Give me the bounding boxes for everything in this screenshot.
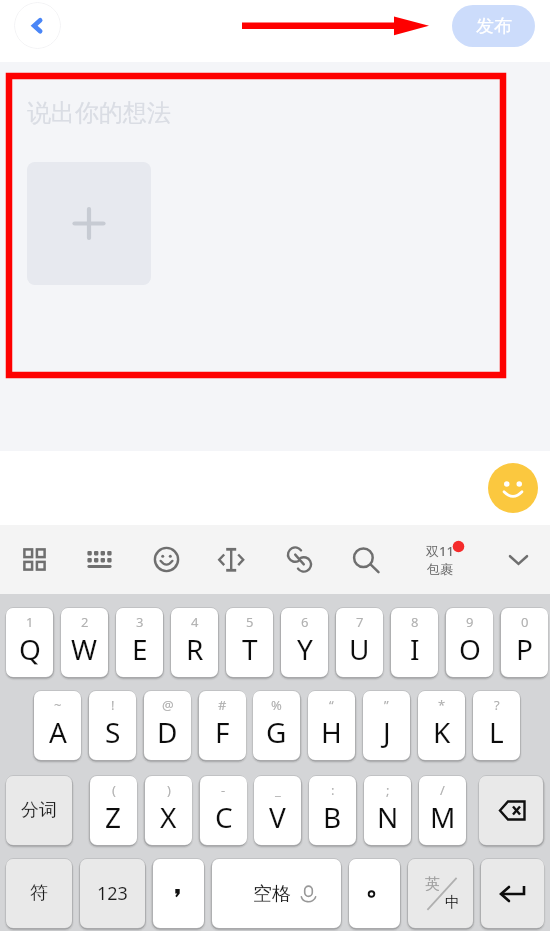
staticText: B xyxy=(323,798,342,836)
button[interactable]: Emoji xyxy=(488,463,538,513)
staticText: 英 xyxy=(425,875,440,894)
button[interactable]: 符 xyxy=(6,859,72,928)
button[interactable]: 0 xyxy=(501,608,548,677)
staticText: J xyxy=(383,713,391,751)
button[interactable]: ) xyxy=(145,776,192,845)
button[interactable]: 8 xyxy=(391,608,438,677)
button[interactable]: 4 xyxy=(171,608,218,677)
button[interactable]: 3 xyxy=(116,608,163,677)
staticText: ; xyxy=(386,781,390,799)
button[interactable]: ” xyxy=(363,691,410,760)
button[interactable]: / xyxy=(419,776,466,845)
button[interactable]: Enter xyxy=(481,859,544,928)
button[interactable]: @ xyxy=(144,691,191,760)
staticText: L xyxy=(489,713,504,751)
staticText: ? xyxy=(494,696,500,714)
button[interactable]: 6 xyxy=(281,608,328,677)
button[interactable]: _ xyxy=(254,776,301,845)
button[interactable]: Collapse keyboard xyxy=(494,525,542,594)
staticText: W xyxy=(71,630,98,668)
staticText: ( xyxy=(112,781,116,799)
button[interactable]: 2 xyxy=(61,608,108,677)
button[interactable]: - xyxy=(200,776,247,845)
button[interactable]: ~ xyxy=(34,691,81,760)
button[interactable]: Search xyxy=(341,525,389,594)
staticText: 符 xyxy=(30,882,48,905)
staticText: N xyxy=(377,798,399,836)
staticText: * xyxy=(438,696,446,714)
button[interactable]: Emoji xyxy=(142,525,190,594)
button[interactable]: 分词 xyxy=(6,776,72,845)
staticText: ! xyxy=(111,696,115,714)
staticText: 2 xyxy=(81,613,89,631)
button[interactable]: 7 xyxy=(336,608,383,677)
staticText: Q xyxy=(19,630,41,668)
staticText: ~ xyxy=(54,696,62,714)
staticText: 8 xyxy=(411,613,419,631)
button[interactable]: Add photo xyxy=(27,162,151,285)
staticText: U xyxy=(349,630,370,668)
staticText: T xyxy=(242,630,258,668)
button[interactable]: 空格 xyxy=(212,859,341,928)
staticText: X xyxy=(160,798,177,836)
staticText: “ xyxy=(329,696,334,714)
staticText: G xyxy=(266,713,287,751)
staticText: V xyxy=(269,798,286,836)
staticText: K xyxy=(433,713,451,751)
button[interactable]: * xyxy=(418,691,465,760)
staticText: M xyxy=(430,798,456,836)
button[interactable]: # xyxy=(199,691,246,760)
staticText: 包裹 xyxy=(427,561,453,577)
button[interactable]: Switch English Chinese xyxy=(408,859,473,928)
button[interactable]: % xyxy=(253,691,300,760)
staticText: 4 xyxy=(191,613,199,631)
staticText: H xyxy=(321,713,342,751)
button[interactable]: 双11 xyxy=(406,525,474,594)
staticText: / xyxy=(440,781,445,799)
button[interactable]: Keyboard xyxy=(75,525,123,594)
button[interactable]: “ xyxy=(308,691,355,760)
staticText: 0 xyxy=(521,613,529,631)
button[interactable]: Text tools xyxy=(207,525,255,594)
staticText: A xyxy=(49,713,67,751)
staticText: # xyxy=(218,696,227,714)
button[interactable]: ? xyxy=(473,691,520,760)
button[interactable]: : xyxy=(309,776,356,845)
button[interactable]: ( xyxy=(90,776,137,845)
button[interactable]: 9 xyxy=(446,608,493,677)
staticText: D xyxy=(157,713,178,751)
staticText: _ xyxy=(275,781,281,799)
button[interactable]: 123 xyxy=(80,859,145,928)
button[interactable]: Backspace xyxy=(479,776,543,845)
staticText: 发布 xyxy=(476,15,512,38)
staticText: 9 xyxy=(466,613,474,631)
staticText: ) xyxy=(167,781,171,799)
button[interactable]: Comma xyxy=(153,859,204,928)
staticText: ” xyxy=(384,696,389,714)
button[interactable]: ! xyxy=(89,691,136,760)
button[interactable]: Period xyxy=(349,859,400,928)
staticText: E xyxy=(132,630,148,668)
staticText: S xyxy=(105,713,121,751)
staticText: 3 xyxy=(136,613,144,631)
staticText: I xyxy=(410,630,420,668)
staticText: % xyxy=(271,696,282,714)
button[interactable]: 1 xyxy=(6,608,53,677)
button[interactable]: Keyboard layouts xyxy=(10,525,58,594)
staticText: R xyxy=(186,630,204,668)
button[interactable]: 发布 xyxy=(452,5,535,47)
staticText: 5 xyxy=(246,613,254,631)
staticText: 中 xyxy=(445,893,460,912)
button[interactable]: 5 xyxy=(226,608,273,677)
button[interactable]: Clip xyxy=(275,525,323,594)
staticText: 6 xyxy=(301,613,309,631)
staticText: 分词 xyxy=(21,799,57,822)
staticText: C xyxy=(215,798,233,836)
button[interactable]: ; xyxy=(364,776,411,845)
staticText: @ xyxy=(162,696,174,714)
button[interactable]: Back xyxy=(14,2,61,49)
staticText: P xyxy=(516,630,533,668)
staticText: 1 xyxy=(26,613,34,631)
staticText: O xyxy=(459,630,481,668)
staticText: 空格 xyxy=(253,882,291,906)
